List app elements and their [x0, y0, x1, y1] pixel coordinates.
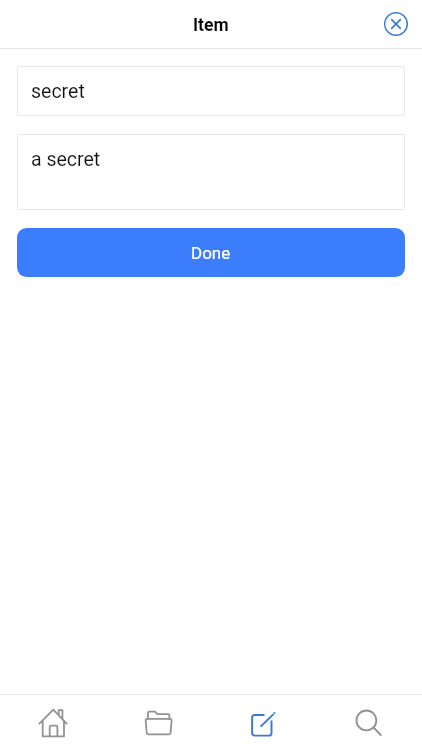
staticText: Item [193, 15, 229, 36]
button[interactable]: Compose [210, 695, 316, 750]
staticText: secret [31, 80, 85, 103]
staticText: Done [191, 243, 231, 263]
staticText: a secret [31, 148, 101, 171]
button[interactable]: Done [17, 228, 405, 277]
button[interactable]: Close [374, 2, 418, 46]
button[interactable]: a secret [17, 134, 405, 210]
button[interactable]: Home [0, 695, 105, 750]
button[interactable]: Search [316, 695, 422, 750]
button[interactable]: secret [17, 66, 405, 116]
button[interactable]: Folders [105, 695, 210, 750]
